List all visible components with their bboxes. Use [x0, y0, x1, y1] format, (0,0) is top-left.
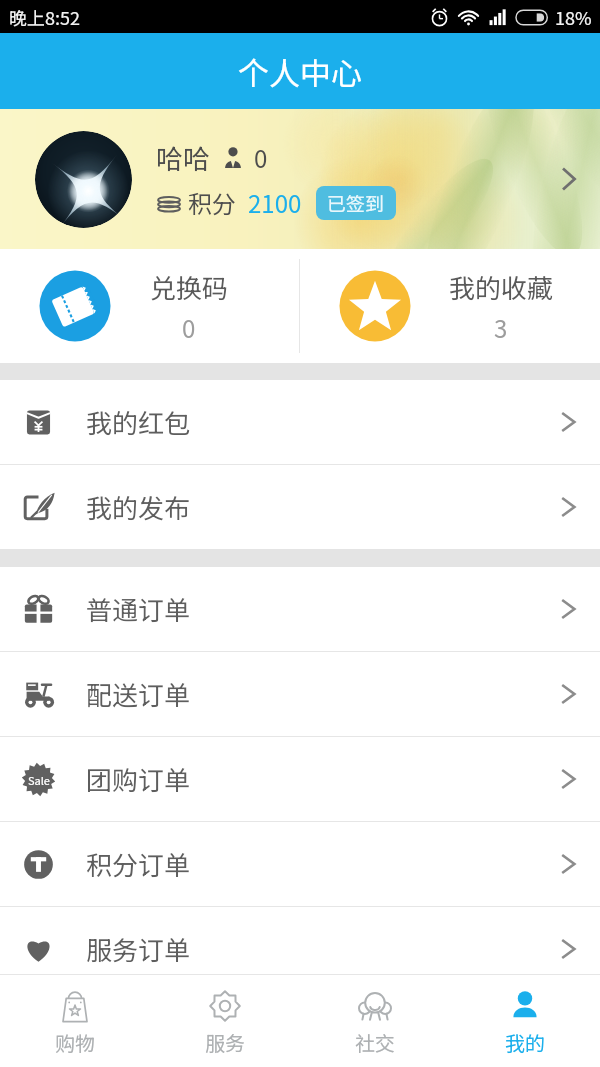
staticText: 哈哈	[156, 138, 210, 177]
staticText: 2100	[248, 185, 302, 220]
button[interactable]: 服务订单	[0, 907, 600, 991]
staticText: 团购订单	[86, 760, 191, 798]
staticText: 我的发布	[86, 488, 191, 526]
staticText: 我的红包	[86, 403, 191, 441]
staticText: 普通订单	[86, 590, 191, 628]
staticText: Sale	[28, 772, 50, 788]
staticText: 个人中心	[238, 49, 362, 94]
staticText: 0	[182, 310, 196, 345]
staticText: 我的收藏	[449, 268, 554, 306]
staticText: 购物	[55, 1028, 95, 1057]
button[interactable]: 社交	[300, 975, 450, 1067]
staticText: 晚上8:52	[9, 4, 80, 30]
staticText: 3	[494, 310, 508, 345]
staticText: 社交	[355, 1028, 395, 1057]
staticText: 服务订单	[86, 930, 191, 968]
staticText: 积分订单	[86, 845, 191, 883]
button[interactable]: 服务	[150, 975, 300, 1067]
other: 个人资料	[561, 165, 578, 193]
button[interactable]: 购物	[0, 975, 150, 1067]
button[interactable]: 我的收藏	[300, 249, 600, 363]
staticText: 0	[254, 140, 268, 175]
staticText: 兑换码	[150, 268, 229, 306]
button[interactable]: 我的	[450, 975, 600, 1067]
button[interactable]: 配送订单	[0, 652, 600, 736]
staticText: 积分	[188, 185, 236, 220]
button[interactable]: 积分订单	[0, 822, 600, 906]
button[interactable]: 普通订单	[0, 567, 600, 651]
button[interactable]: 哈哈	[0, 109, 600, 249]
button[interactable]: 已签到	[316, 186, 396, 220]
button[interactable]: Sale	[0, 737, 600, 821]
staticText: 配送订单	[86, 675, 191, 713]
button[interactable]: 我的红包	[0, 380, 600, 464]
staticText: 我的	[505, 1028, 545, 1057]
staticText: 服务	[205, 1028, 245, 1057]
button[interactable]: 我的发布	[0, 465, 600, 549]
staticText: 18%	[555, 4, 592, 30]
staticText: 已签到	[327, 189, 385, 217]
button[interactable]: 兑换码	[0, 249, 299, 363]
